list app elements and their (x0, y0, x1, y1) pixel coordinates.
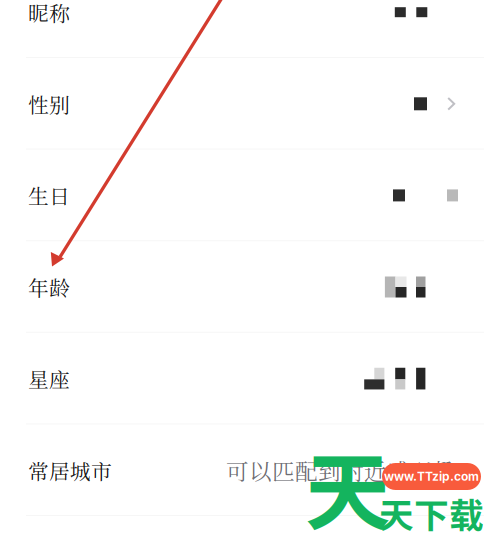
button[interactable]: 昵称 (0, 0, 484, 58)
button[interactable]: 年龄 (0, 241, 484, 333)
button[interactable]: 生日 (0, 150, 484, 241)
staticText: 性别 (28, 89, 70, 119)
button[interactable]: 常居城市 (0, 424, 484, 516)
staticText: www.TTzip.com (384, 469, 479, 484)
staticText: 天下载 (379, 488, 484, 534)
staticText: 星座 (28, 364, 70, 393)
button[interactable]: 性别 (0, 58, 484, 150)
staticText: 昵称 (28, 0, 70, 27)
staticText: 常居城市 (28, 455, 112, 485)
staticText: 可以匹配到附近感兴趣 (226, 454, 456, 486)
staticText: 生日 (28, 181, 70, 210)
button[interactable]: 星座 (0, 333, 484, 424)
staticText: 天 (305, 424, 390, 534)
staticText: 年龄 (28, 272, 70, 302)
